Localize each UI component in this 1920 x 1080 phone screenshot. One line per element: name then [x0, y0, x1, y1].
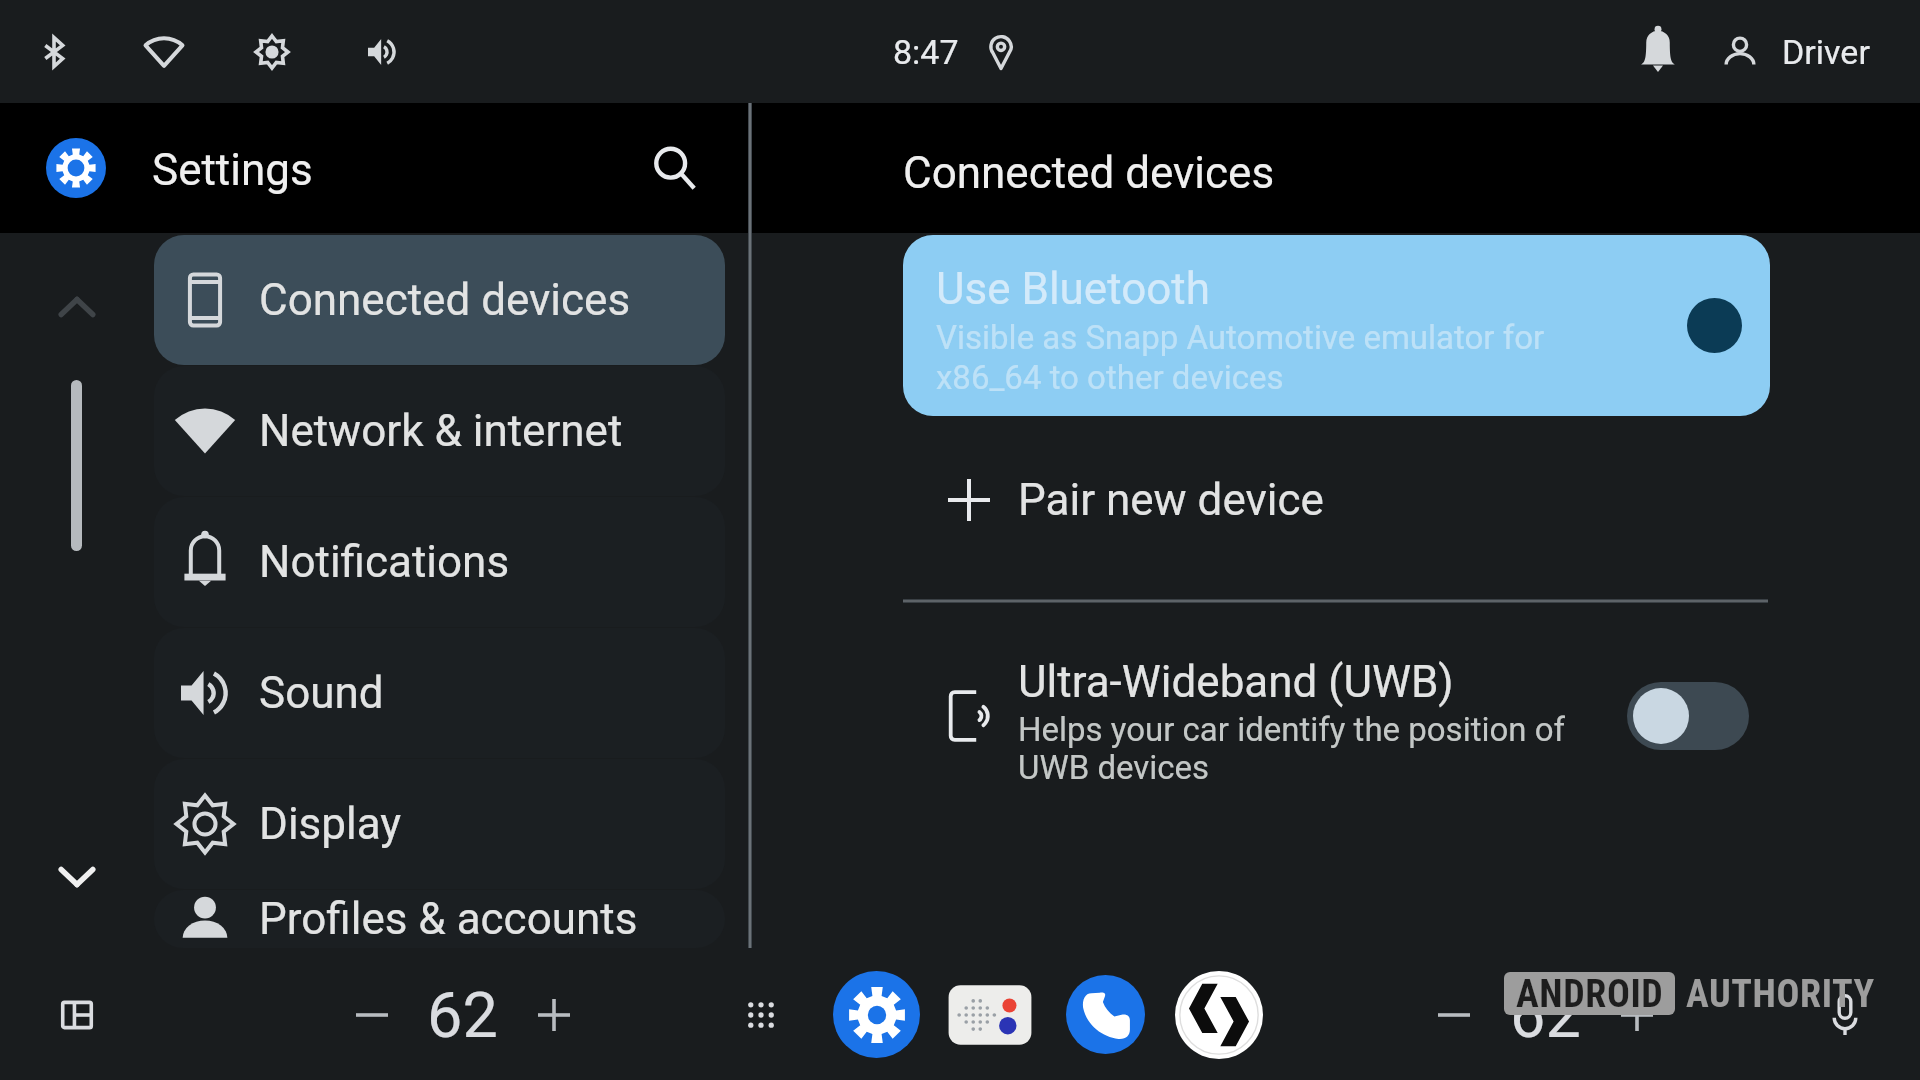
button[interactable]: Scroll down: [46, 846, 107, 907]
button[interactable]: Bluetooth: [4, 0, 104, 103]
staticText: Driver: [1782, 32, 1870, 72]
staticText: Connected devices: [903, 147, 1275, 199]
button[interactable]: Notifications: [1635, 0, 1681, 103]
button[interactable]: Ultra-Wideband (UWB): [940, 644, 1749, 799]
button[interactable]: Profiles & accounts: [154, 890, 725, 948]
staticText: Ultra-Wideband (UWB): [1018, 656, 1454, 708]
button[interactable]: Increase passenger temperature: [1605, 983, 1669, 1047]
staticText: Visible as Snapp Automotive emulator for…: [936, 318, 1561, 398]
staticText: Settings: [152, 144, 313, 196]
button[interactable]: Network & internet: [154, 366, 725, 496]
button[interactable]: Voice assistant: [1813, 983, 1877, 1047]
button[interactable]: Decrease passenger temperature: [1422, 983, 1486, 1047]
button[interactable]: Scroll up: [46, 276, 107, 337]
button[interactable]: Search: [636, 129, 714, 207]
staticText: Display: [259, 798, 402, 850]
button[interactable]: Sound: [154, 628, 725, 758]
button[interactable]: Use Bluetooth: [903, 235, 1770, 416]
staticText: 62: [427, 979, 498, 1053]
staticText: Use Bluetooth: [936, 263, 1210, 315]
button[interactable]: Display: [154, 759, 725, 889]
button[interactable]: All apps: [727, 981, 795, 1049]
staticText: Network & internet: [259, 405, 623, 457]
staticText: ANDROID: [1516, 972, 1664, 1015]
button[interactable]: Media: [941, 978, 1039, 1052]
button[interactable]: Driver: [1681, 16, 1920, 88]
staticText: 8:47: [893, 32, 959, 72]
staticText: Notifications: [259, 536, 510, 588]
button[interactable]: Volume: [332, 0, 432, 103]
button[interactable]: Connected devices: [154, 235, 725, 365]
button[interactable]: Notifications: [154, 497, 725, 627]
button[interactable]: Snapp Automotive: [1175, 971, 1263, 1059]
button[interactable]: Increase driver temperature: [522, 983, 586, 1047]
staticText: Connected devices: [259, 274, 631, 326]
staticText: AUTHORITY: [1686, 972, 1875, 1015]
button[interactable]: Decrease driver temperature: [340, 983, 404, 1047]
button[interactable]: Phone: [1066, 975, 1145, 1054]
staticText: Helps your car identify the position of …: [1018, 710, 1588, 787]
staticText: Sound: [259, 667, 384, 719]
staticText: 62: [1510, 979, 1581, 1053]
button[interactable]: Settings: [833, 971, 920, 1058]
button[interactable]: Brightness: [222, 0, 322, 103]
button[interactable]: Toggle Ultra-Wideband: [1627, 682, 1749, 750]
staticText: Profiles & accounts: [259, 893, 638, 945]
button[interactable]: Wi-Fi: [114, 0, 214, 103]
button[interactable]: Split screen: [42, 980, 111, 1049]
staticText: Pair new device: [1018, 474, 1324, 526]
button[interactable]: Pair new device: [929, 450, 1350, 550]
button[interactable]: Settings app icon: [46, 138, 106, 198]
